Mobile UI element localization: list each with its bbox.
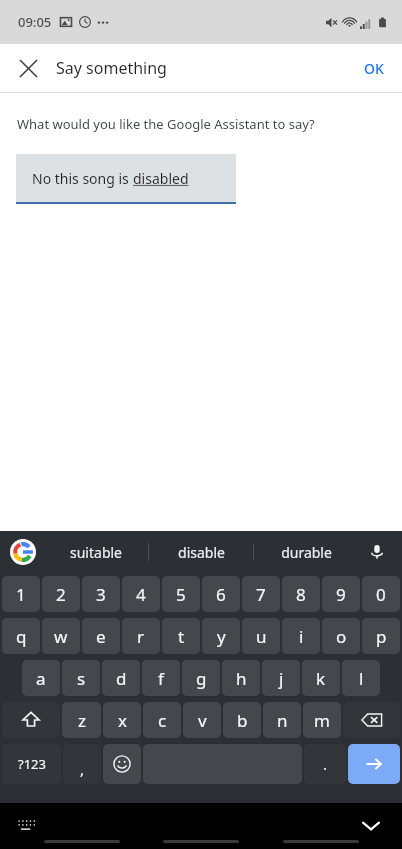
button[interactable]: Comma: [63, 744, 101, 784]
button[interactable]: Switch keyboard: [10, 810, 42, 842]
button[interactable]: a: [22, 660, 60, 696]
button[interactable]: 1: [2, 576, 40, 612]
staticText: 3: [96, 583, 106, 606]
button[interactable]: y: [202, 618, 240, 654]
staticText: e: [96, 625, 106, 648]
button[interactable]: 3: [82, 576, 120, 612]
button[interactable]: v: [183, 702, 221, 738]
button[interactable]: u: [242, 618, 280, 654]
staticText: l: [359, 667, 364, 690]
button[interactable]: 7: [242, 576, 280, 612]
button[interactable]: h: [222, 660, 260, 696]
button[interactable]: i: [282, 618, 320, 654]
button[interactable]: g: [182, 660, 220, 696]
staticText: p: [376, 625, 387, 648]
button[interactable]: d: [102, 660, 140, 696]
button[interactable]: Google: [10, 539, 36, 565]
button[interactable]: f: [142, 660, 180, 696]
staticText: 4: [136, 583, 146, 606]
button[interactable]: 5: [162, 576, 200, 612]
staticText: .: [323, 754, 328, 774]
staticText: 7: [256, 583, 266, 606]
button[interactable]: x: [103, 702, 141, 738]
staticText: ?123: [18, 755, 46, 773]
button[interactable]: 9: [322, 576, 360, 612]
button[interactable]: Emoji: [103, 744, 141, 784]
staticText: r: [137, 625, 145, 648]
staticText: c: [158, 709, 167, 732]
staticText: 0: [376, 583, 386, 606]
button[interactable]: e: [82, 618, 120, 654]
staticText: 9: [336, 583, 346, 606]
button[interactable]: c: [143, 702, 181, 738]
staticText: y: [217, 625, 226, 648]
staticText: g: [196, 667, 207, 690]
staticText: q: [16, 625, 27, 648]
button[interactable]: r: [122, 618, 160, 654]
staticText: n: [277, 709, 288, 732]
button[interactable]: k: [302, 660, 340, 696]
button[interactable]: p: [362, 618, 400, 654]
staticText: 8: [296, 583, 306, 606]
staticText: j: [279, 667, 284, 690]
staticText: h: [236, 667, 247, 690]
staticText: durable: [281, 543, 332, 562]
button[interactable]: disable: [149, 531, 253, 573]
staticText: z: [78, 709, 86, 732]
button[interactable]: 6: [202, 576, 240, 612]
button[interactable]: s: [62, 660, 100, 696]
button[interactable]: Enter: [348, 744, 400, 784]
staticText: No this song is: [32, 169, 133, 188]
button[interactable]: durable: [254, 531, 358, 573]
button[interactable]: ?123: [2, 744, 61, 784]
button[interactable]: suitable: [44, 531, 148, 573]
button[interactable]: b: [223, 702, 261, 738]
staticText: t: [178, 625, 185, 648]
button[interactable]: 2: [42, 576, 80, 612]
staticText: b: [237, 709, 248, 732]
staticText: a: [36, 667, 46, 690]
button[interactable]: n: [263, 702, 301, 738]
staticText: o: [336, 625, 347, 648]
button[interactable]: m: [303, 702, 341, 738]
button[interactable]: Period: [304, 744, 346, 784]
staticText: OK: [364, 59, 384, 78]
button[interactable]: Voice input: [362, 537, 392, 567]
staticText: i: [299, 625, 304, 648]
staticText: u: [256, 625, 267, 648]
staticText: 2: [56, 583, 66, 606]
staticText: Say something: [56, 57, 167, 79]
button[interactable]: Close: [8, 48, 48, 88]
button[interactable]: No this song is: [16, 154, 236, 202]
staticText: d: [116, 667, 127, 690]
button[interactable]: Shift: [2, 702, 60, 738]
button[interactable]: z: [62, 702, 101, 738]
button[interactable]: q: [2, 618, 40, 654]
staticText: s: [77, 667, 86, 690]
staticText: v: [198, 709, 207, 732]
staticText: 5: [176, 583, 186, 606]
button[interactable]: Backspace: [343, 702, 400, 738]
staticText: m: [314, 709, 330, 732]
staticText: x: [118, 709, 127, 732]
button[interactable]: t: [162, 618, 200, 654]
staticText: 09:05: [18, 13, 52, 31]
staticText: f: [158, 667, 164, 690]
staticText: 6: [216, 583, 226, 606]
button[interactable]: w: [42, 618, 80, 654]
staticText: disable: [178, 543, 225, 562]
button[interactable]: l: [342, 660, 380, 696]
staticText: ,: [80, 759, 85, 779]
staticText: 1: [16, 583, 26, 606]
staticText: suitable: [70, 543, 122, 562]
button[interactable]: 4: [122, 576, 160, 612]
button[interactable]: o: [322, 618, 360, 654]
button[interactable]: j: [262, 660, 300, 696]
button[interactable]: 0: [362, 576, 400, 612]
staticText: w: [54, 625, 68, 648]
staticText: What would you like the Google Assistant…: [17, 115, 315, 133]
button[interactable]: OK: [346, 44, 402, 92]
button[interactable]: 8: [282, 576, 320, 612]
button[interactable]: Hide keyboard: [354, 809, 388, 843]
